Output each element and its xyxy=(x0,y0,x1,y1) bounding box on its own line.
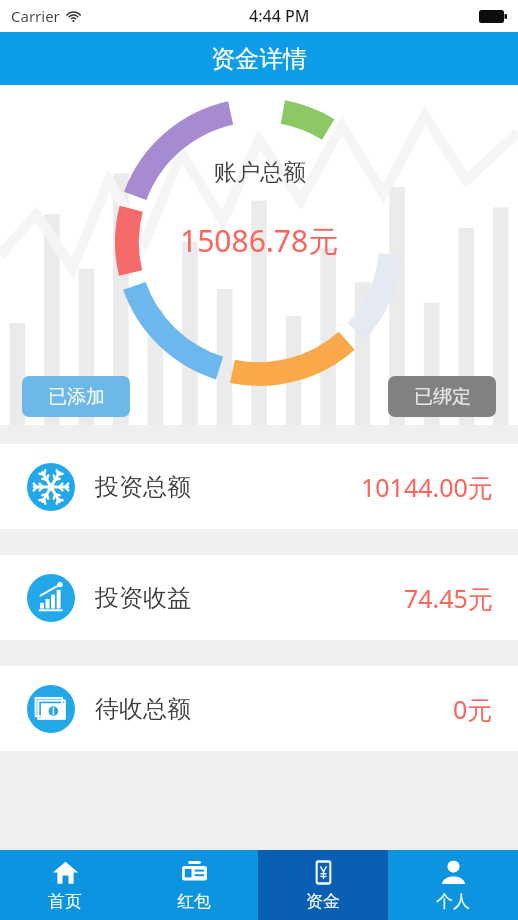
staticText: 首页 xyxy=(48,891,82,912)
staticText: 资金详情 xyxy=(211,44,307,74)
staticText: 投资总额 xyxy=(95,472,191,502)
button[interactable]: 投资收益 xyxy=(0,555,518,640)
staticText: 资金 xyxy=(306,891,340,912)
staticText: 0元 xyxy=(453,692,493,726)
staticText: 红包 xyxy=(177,891,211,912)
button[interactable]: 已添加 xyxy=(22,376,130,417)
staticText: 已绑定 xyxy=(414,385,471,409)
button[interactable]: 资金 xyxy=(258,850,388,920)
staticText: 已添加 xyxy=(48,385,105,409)
staticText: 账户总额 xyxy=(214,158,306,187)
staticText: Carrier xyxy=(11,6,60,26)
staticText: 待收总额 xyxy=(95,694,191,724)
button[interactable]: 红包 xyxy=(129,850,258,920)
staticText: 15086.78元 xyxy=(180,220,339,261)
button[interactable]: 首页 xyxy=(0,850,129,920)
staticText: 10144.00元 xyxy=(361,470,493,504)
button[interactable]: 个人 xyxy=(388,850,518,920)
button[interactable]: 待收总额 xyxy=(0,666,518,751)
button[interactable]: 投资总额 xyxy=(0,444,518,529)
staticText: 投资收益 xyxy=(95,583,191,613)
staticText: 个人 xyxy=(436,891,470,912)
staticText: 4:44 PM xyxy=(249,5,310,27)
staticText: 74.45元 xyxy=(404,581,493,615)
button[interactable]: 已绑定 xyxy=(388,376,496,417)
